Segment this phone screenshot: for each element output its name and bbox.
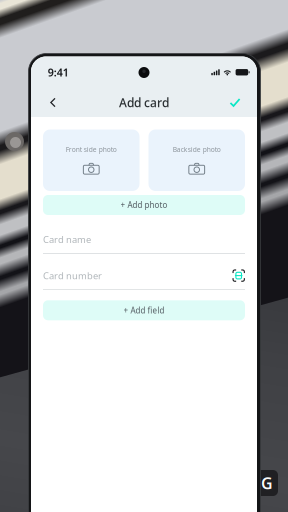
button[interactable]: Back (42, 91, 64, 113)
button[interactable]: + Add field (43, 300, 245, 320)
button[interactable]: Backside photo (148, 129, 245, 191)
staticText: Backside photo (173, 145, 221, 154)
button[interactable]: + Add photo (43, 195, 245, 215)
staticText: Add card (119, 94, 169, 110)
button[interactable]: Save card (224, 91, 246, 113)
staticText: + Add photo (120, 200, 167, 210)
staticText: + Add field (123, 305, 164, 316)
staticText: Front side photo (66, 145, 117, 154)
staticText: Card number (43, 269, 102, 282)
staticText: Card name (43, 233, 91, 246)
staticText: 9:41 (48, 65, 69, 79)
button[interactable]: Scan barcode (232, 269, 245, 282)
button[interactable]: Front side photo (43, 129, 139, 191)
staticText: G (261, 472, 273, 494)
